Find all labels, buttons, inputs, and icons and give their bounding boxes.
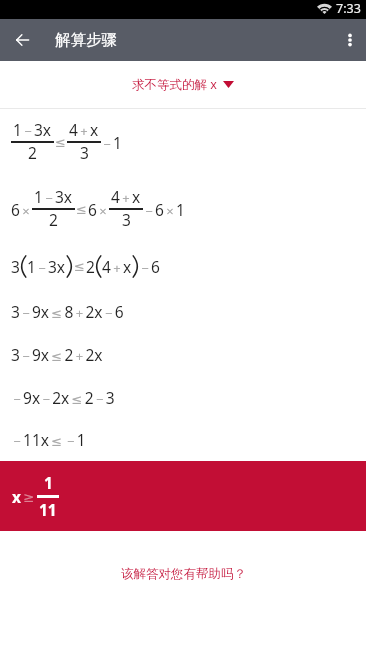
button[interactable]: More options [333,19,366,61]
staticText: − 6 × 1 [143,199,185,220]
staticText: ≥ [23,489,35,505]
button[interactable]: 该解答对您有帮助吗？ [0,561,366,586]
staticText: 3 [11,256,20,277]
button[interactable]: x [0,461,366,531]
staticText: 4 + x [102,256,132,277]
staticText: 2 [28,142,37,163]
staticText: 2 [49,209,58,230]
button[interactable]: Back [0,19,44,61]
staticText: 1 − 3x [27,256,66,277]
staticText: 3 [80,142,89,163]
staticText: 1 [44,472,53,493]
staticText: ≤ [55,135,66,150]
staticText: 该解答对您有帮助吗？ [121,566,246,582]
staticText: 11 [39,499,57,520]
staticText: 1 − 3x [34,186,73,207]
staticText: 6 × [11,199,32,220]
staticText: 求不等式的解 x [132,76,217,93]
staticText: − 9x − 2x ≤ 2 − 3 [11,387,115,408]
staticText: x [12,486,21,507]
staticText: ≤ [74,259,85,274]
staticText: 解算步骤 [55,30,117,50]
staticText: − 1 [101,132,122,153]
staticText: 3 − 9x ≤ 8 + 2x − 6 [11,301,124,322]
button[interactable]: 求不等式的解 x [0,61,366,108]
staticText: 2 [86,256,95,277]
staticText: ≤ [76,202,87,217]
staticText: 3 − 9x ≤ 2 + 2x [11,344,103,365]
staticText: − 6 [139,256,160,277]
staticText: 4 + x [69,119,99,140]
staticText: − 11x ≤ − 1 [11,429,86,450]
staticText: 4 + x [111,186,141,207]
staticText: 6 × [88,199,109,220]
staticText: 3 [122,209,131,230]
staticText: 7:33 [336,0,361,17]
staticText: 1 − 3x [13,119,52,140]
